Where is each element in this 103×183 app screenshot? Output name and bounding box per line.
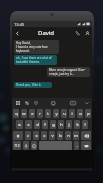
staticText: g bbox=[52, 122, 55, 128]
button[interactable]: Themes bbox=[13, 98, 22, 108]
staticText: w bbox=[22, 111, 26, 117]
button[interactable]: Emoji bbox=[31, 141, 37, 150]
staticText: m bbox=[74, 133, 78, 139]
button[interactable]: c bbox=[41, 131, 47, 140]
staticText: David bbox=[38, 29, 55, 37]
button[interactable]: Emoji bbox=[49, 98, 58, 108]
staticText: p bbox=[87, 111, 90, 117]
staticText: c bbox=[43, 133, 46, 139]
button[interactable]: Hey David, I found a very cute face keyb… bbox=[14, 40, 59, 54]
button[interactable]: k bbox=[74, 120, 80, 129]
staticText: u bbox=[63, 111, 66, 117]
button[interactable]: More bbox=[82, 98, 91, 108]
staticText: ?12 bbox=[14, 144, 20, 148]
staticText: Hey David, I found a very cute face keyb… bbox=[16, 41, 57, 53]
button[interactable]: m bbox=[73, 131, 79, 140]
staticText: i bbox=[71, 111, 73, 117]
button[interactable]: t bbox=[45, 109, 51, 118]
button[interactable]: v bbox=[49, 131, 55, 140]
button[interactable]: Backspace bbox=[81, 131, 91, 140]
button[interactable]: Enter bbox=[81, 141, 91, 150]
button[interactable]: e bbox=[29, 109, 35, 118]
button[interactable]: More emojis support Give~ emojis, just t… bbox=[47, 67, 90, 77]
staticText: v bbox=[51, 133, 54, 139]
button[interactable]: d bbox=[34, 120, 40, 129]
staticText: t bbox=[47, 111, 49, 117]
staticText: . bbox=[76, 143, 78, 149]
button[interactable]: x bbox=[33, 131, 39, 140]
button[interactable]: g bbox=[50, 120, 56, 129]
staticText: f bbox=[44, 122, 46, 128]
button[interactable]: s bbox=[25, 120, 32, 129]
staticText: n bbox=[67, 133, 70, 139]
button[interactable]: y bbox=[53, 109, 59, 118]
staticText: More emojis support Give~ emojis, just t… bbox=[49, 68, 86, 76]
staticText: oh., I see there are a lot of beautiful … bbox=[16, 56, 52, 64]
button[interactable]: Contact info bbox=[82, 27, 92, 39]
button[interactable]: u bbox=[61, 109, 67, 118]
staticText: l bbox=[84, 122, 86, 128]
button[interactable]: j bbox=[66, 120, 72, 129]
button[interactable]: p bbox=[85, 109, 91, 118]
staticText: z bbox=[27, 133, 29, 139]
button[interactable]: l bbox=[82, 120, 88, 129]
staticText: h bbox=[60, 122, 63, 128]
staticText: y bbox=[55, 111, 58, 117]
staticText: q bbox=[15, 111, 18, 117]
staticText: e bbox=[31, 111, 34, 117]
button[interactable]: Stickers bbox=[31, 98, 40, 108]
button[interactable]: . bbox=[74, 141, 79, 150]
staticText: b bbox=[59, 133, 62, 139]
button[interactable]: Back bbox=[12, 27, 22, 39]
button[interactable]: n bbox=[65, 131, 71, 140]
button[interactable]: Settings bbox=[22, 98, 31, 108]
button[interactable]: b bbox=[57, 131, 63, 140]
button[interactable]: Shift bbox=[13, 131, 23, 140]
button[interactable]: r bbox=[37, 109, 43, 118]
staticText: x bbox=[35, 133, 38, 139]
staticText: 13:45 bbox=[14, 22, 25, 27]
button[interactable]: q bbox=[13, 109, 19, 118]
button[interactable]: Call bbox=[72, 27, 82, 39]
button[interactable]: Thank you, I like it. bbox=[14, 82, 52, 88]
staticText: r bbox=[39, 111, 41, 117]
staticText: k bbox=[76, 122, 79, 128]
button[interactable]: f bbox=[42, 120, 48, 129]
button[interactable]: i bbox=[69, 109, 75, 118]
staticText: a bbox=[18, 122, 21, 128]
button[interactable]: oh., I see there are a lot of beautiful … bbox=[14, 55, 57, 65]
button[interactable]: o bbox=[77, 109, 83, 118]
staticText: Thank you, I like it. bbox=[16, 83, 42, 87]
staticText: s bbox=[27, 122, 30, 128]
staticText: o bbox=[79, 111, 82, 117]
button[interactable]: h bbox=[58, 120, 64, 129]
button[interactable]: ?12 bbox=[13, 141, 21, 150]
staticText: d bbox=[36, 122, 39, 128]
button[interactable]: a bbox=[16, 120, 23, 129]
button[interactable]: Voice input bbox=[23, 141, 29, 150]
button[interactable]: GIF bbox=[68, 98, 77, 108]
button[interactable]: w bbox=[21, 109, 27, 118]
button[interactable]: z bbox=[25, 131, 31, 140]
staticText: j bbox=[68, 122, 70, 128]
